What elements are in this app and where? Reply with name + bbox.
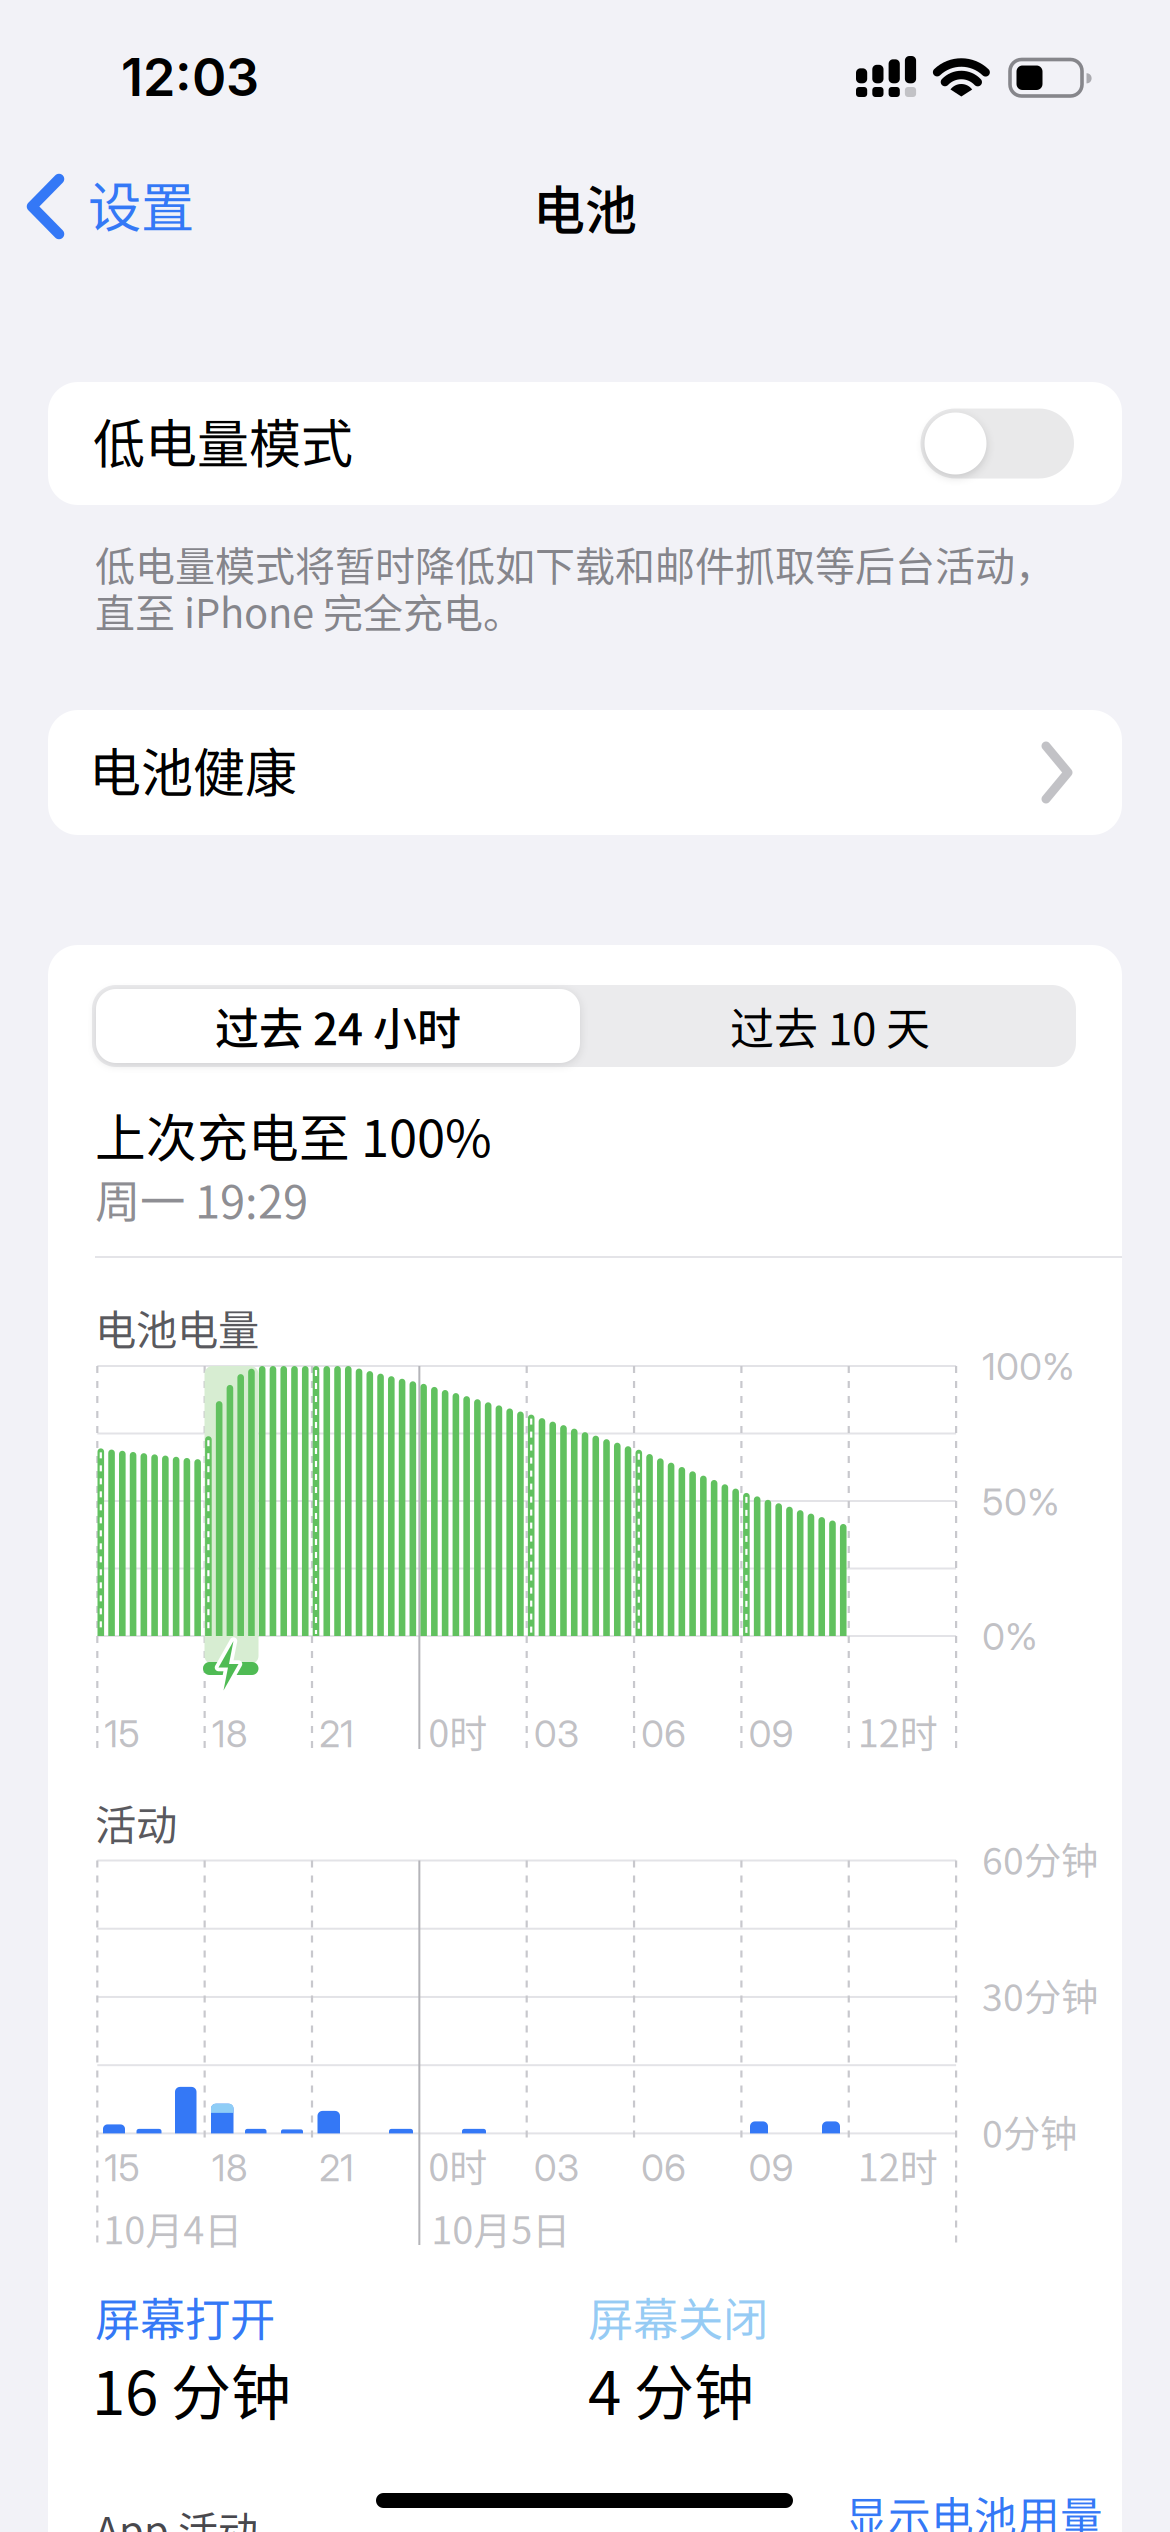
staticText: 10月4日 <box>103 2200 242 2255</box>
staticText: 18 <box>212 1712 248 1756</box>
staticText: 显示电池用量 <box>845 2484 1103 2532</box>
button[interactable]: 电池健康 <box>48 710 1122 835</box>
staticText: 09 <box>748 2146 793 2190</box>
staticText: 15 <box>104 1712 140 1756</box>
staticText: 12时 <box>858 2137 938 2192</box>
button[interactable]: 过去 10 天 <box>584 985 1076 1067</box>
staticText: 低电量模式 <box>93 403 353 478</box>
staticText: 0% <box>982 1614 1038 1658</box>
staticText: 10月5日 <box>431 2200 570 2255</box>
button[interactable]: 设置 <box>0 0 230 270</box>
staticText: 0时 <box>428 2137 487 2192</box>
staticText: 18 <box>212 2146 248 2190</box>
staticText: App 活动 <box>95 2500 258 2532</box>
staticText: 03 <box>534 2146 580 2190</box>
staticText: 过去 24 小时 <box>215 994 461 1058</box>
staticText: 12:03 <box>121 46 259 108</box>
staticText: 低电量模式将暂时降低如下载和邮件抓取等后台活动， <box>95 535 1055 592</box>
staticText: 06 <box>641 1712 686 1756</box>
staticText: 0分钟 <box>982 2104 1077 2158</box>
staticText: 0时 <box>428 1703 487 1758</box>
staticText: 屏幕关闭 <box>588 2284 768 2350</box>
button[interactable]: 过去 24 小时 <box>92 985 584 1067</box>
button[interactable]: 低电量模式 <box>920 408 1074 478</box>
button[interactable]: 显示电池用量 <box>845 2484 1103 2532</box>
staticText: 直至 iPhone 完全充电。 <box>95 582 523 639</box>
staticText: 电池电量 <box>95 1297 259 1357</box>
staticText: 21 <box>319 1712 354 1756</box>
staticText: 12时 <box>858 1703 938 1758</box>
staticText: 60分钟 <box>982 1831 1098 1885</box>
staticText: 活动 <box>95 1792 177 1852</box>
staticText: 过去 10 天 <box>730 994 930 1058</box>
staticText: 50% <box>982 1480 1060 1524</box>
staticText: 屏幕打开 <box>95 2284 275 2350</box>
staticText: 15 <box>104 2146 140 2190</box>
staticText: 周一 19:29 <box>95 1166 308 1232</box>
staticText: 21 <box>319 2146 354 2190</box>
staticText: 100% <box>982 1344 1075 1388</box>
staticText: 上次充电至 100% <box>95 1098 492 1172</box>
staticText: 30分钟 <box>982 1968 1098 2022</box>
staticText: 设置 <box>88 165 194 243</box>
staticText: 4 分钟 <box>588 2345 754 2432</box>
staticText: 电池 <box>533 169 637 245</box>
staticText: 09 <box>748 1712 793 1756</box>
staticText: 06 <box>641 2146 686 2190</box>
staticText: 03 <box>534 1712 580 1756</box>
staticText: 电池健康 <box>89 732 297 807</box>
staticText: 16 分钟 <box>92 2345 291 2432</box>
